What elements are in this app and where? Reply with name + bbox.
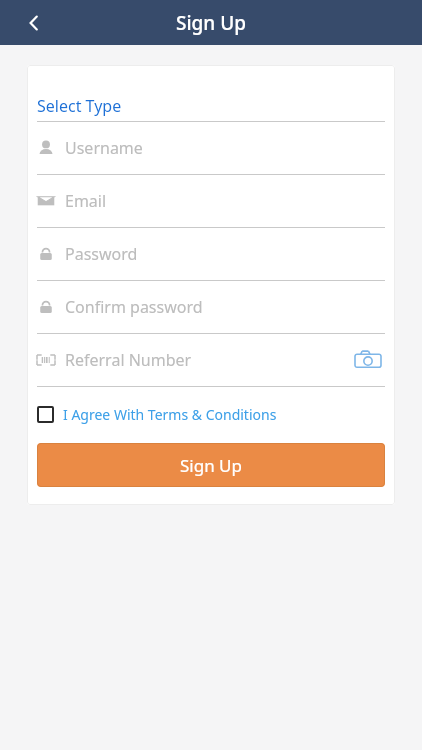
button[interactable]: Scan with camera [351,343,385,377]
button[interactable]: Sign Up [37,443,385,487]
staticText: Sign Up [176,10,247,36]
button[interactable]: Referral Number [37,334,385,386]
staticText: Email [65,190,385,212]
staticText: Username [65,137,385,159]
staticText: Sign Up [180,454,242,477]
button[interactable]: Back [16,5,52,41]
button[interactable]: Select Type [37,91,385,121]
button[interactable]: Username [37,122,385,174]
staticText: Referral Number [65,349,351,371]
button[interactable]: Confirm password [37,281,385,333]
button[interactable]: I Agree With Terms & Conditions [37,401,385,427]
staticText: Confirm password [65,296,385,318]
button[interactable]: Email [37,175,385,227]
staticText: Select Type [37,95,122,117]
button[interactable]: Password [37,228,385,280]
staticText: Password [65,243,385,265]
staticText: I Agree With Terms & Conditions [63,405,277,424]
